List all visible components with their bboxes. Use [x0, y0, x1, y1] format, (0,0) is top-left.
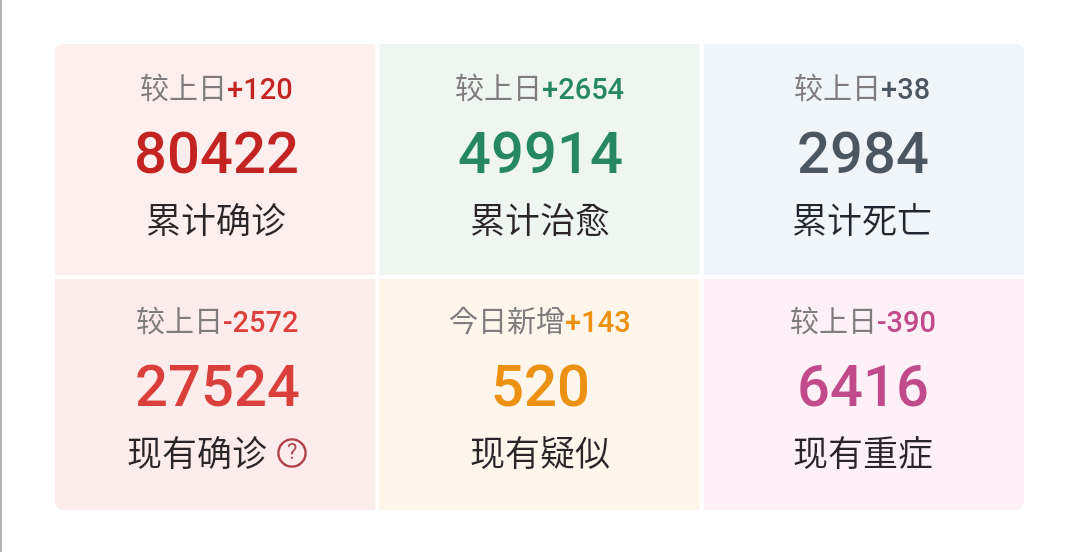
staticText: 较上日+120	[140, 65, 293, 107]
staticText: 520	[491, 352, 590, 420]
staticText: 累计确诊	[146, 192, 287, 243]
button[interactable]: 较上日-390	[701, 277, 1024, 510]
staticText: 6416	[797, 352, 929, 420]
staticText: 较上日-390	[790, 298, 936, 340]
staticText: 较上日+2654	[455, 65, 625, 107]
staticText: ?	[287, 439, 298, 465]
staticText: 27524	[135, 352, 300, 420]
staticText: 今日新增+143	[449, 298, 631, 340]
staticText: 现有确诊	[127, 425, 268, 476]
staticText: 较上日+38	[794, 65, 931, 107]
staticText: 较上日-2572	[136, 298, 299, 340]
button[interactable]: 较上日+38	[701, 44, 1024, 277]
staticText: 累计死亡	[792, 192, 933, 243]
staticText: 2984	[797, 119, 929, 187]
button[interactable]: 较上日-2572	[55, 277, 378, 510]
staticText: 49914	[458, 119, 623, 187]
button[interactable]: 较上日+2654	[378, 44, 701, 277]
staticText: 80422	[134, 119, 299, 187]
button[interactable]: Help	[277, 436, 307, 466]
staticText: 现有重症	[793, 425, 934, 476]
button[interactable]: 较上日+120	[55, 44, 378, 277]
button[interactable]: 今日新增+143	[378, 277, 701, 510]
staticText: 累计治愈	[470, 192, 611, 243]
staticText: 现有疑似	[470, 425, 611, 476]
